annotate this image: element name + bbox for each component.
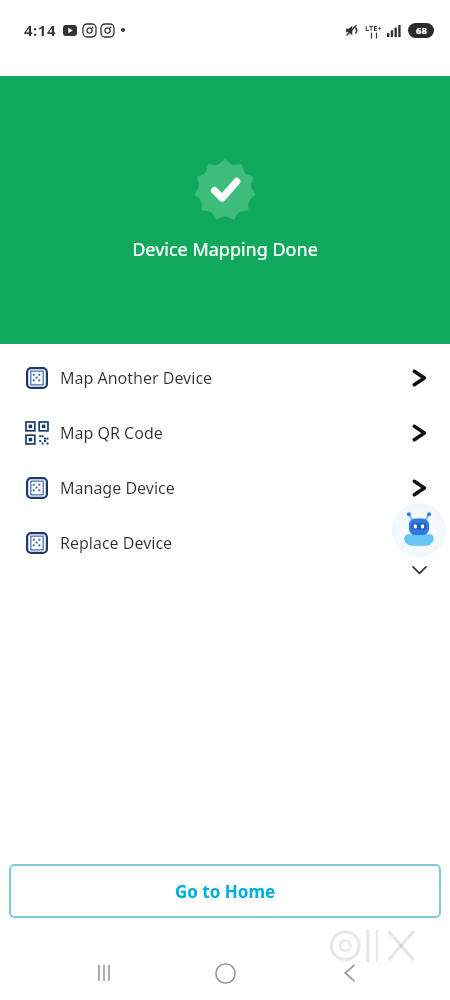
staticText: 68	[416, 24, 427, 37]
staticText: 4:14	[24, 20, 56, 40]
button[interactable]: Recents	[84, 953, 124, 993]
button[interactable]: Home	[203, 951, 247, 995]
button[interactable]: Collapse assistant	[402, 559, 436, 581]
button[interactable]: Chat assistant	[392, 503, 446, 557]
other: Map Another Device	[410, 366, 428, 390]
other: Manage Device	[410, 476, 428, 500]
staticText: Device Mapping Done	[132, 237, 318, 262]
staticText: Map QR Code	[60, 422, 163, 444]
button[interactable]: Map QR Code	[0, 405, 450, 460]
staticText: Map Another Device	[60, 367, 213, 389]
button[interactable]: Go to Home	[9, 864, 441, 918]
button[interactable]: Map Another Device	[0, 350, 450, 405]
button[interactable]: Manage Device	[0, 460, 450, 515]
staticText: Go to Home	[175, 880, 276, 903]
staticText: Manage Device	[60, 477, 175, 499]
other: Map QR Code	[410, 421, 428, 445]
button[interactable]: Replace Device	[0, 515, 450, 570]
staticText: Replace Device	[60, 532, 173, 554]
staticText: LTE+	[365, 23, 382, 33]
button[interactable]: Back	[330, 953, 370, 993]
